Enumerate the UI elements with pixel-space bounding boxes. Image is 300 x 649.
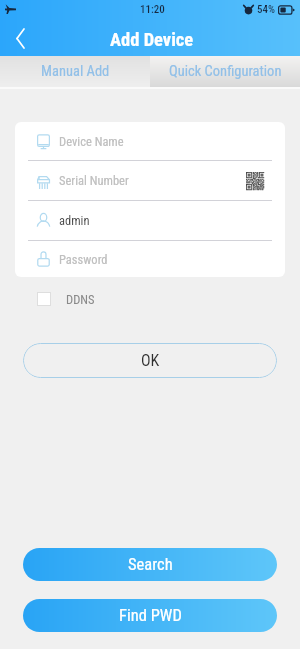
button[interactable]: admin — [15, 201, 285, 241]
staticText: Search — [128, 555, 173, 574]
button[interactable]: Password — [15, 241, 285, 277]
staticText: Serial Number — [59, 173, 129, 188]
staticText: Device Name — [59, 134, 124, 149]
button[interactable]: Search — [23, 548, 277, 581]
staticText: Quick Configuration — [169, 63, 282, 80]
button[interactable]: Manual Add — [0, 56, 150, 87]
staticText: OK — [141, 351, 160, 370]
button[interactable]: DDNS — [30, 291, 95, 307]
staticText: 54% — [257, 3, 275, 16]
button[interactable]: Device Name — [15, 122, 285, 161]
staticText: Password — [59, 252, 108, 267]
staticText: Find PWD — [119, 606, 182, 625]
button[interactable]: OK — [23, 343, 277, 378]
staticText: Manual Add — [41, 63, 110, 80]
button[interactable]: Scan QR code — [246, 172, 264, 190]
staticText: Add Device — [110, 29, 194, 51]
button[interactable]: Find PWD — [23, 599, 277, 632]
staticText: 11:20 — [140, 3, 165, 16]
staticText: admin — [59, 213, 90, 228]
button[interactable]: Serial Number — [15, 161, 285, 201]
staticText: DDNS — [66, 292, 95, 307]
button[interactable]: Back — [2, 20, 38, 56]
button[interactable]: Quick Configuration — [150, 56, 300, 87]
